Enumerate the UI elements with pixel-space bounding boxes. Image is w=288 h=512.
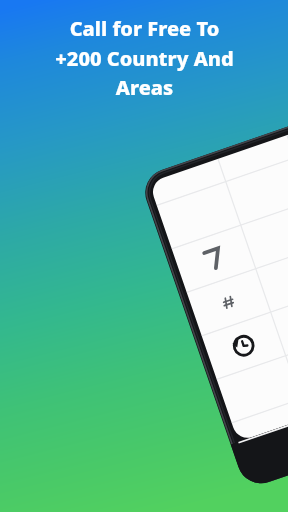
other: Phone dialer preview <box>0 0 288 512</box>
button[interactable]: Call for Free To +200 Country And Areas <box>16 15 272 101</box>
staticText: Call for Free To +200 Country And Areas <box>55 15 234 101</box>
